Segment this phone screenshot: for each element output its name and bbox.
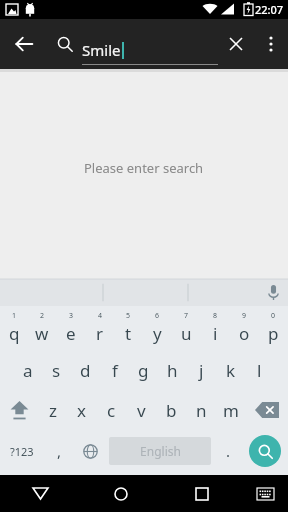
button[interactable]: 1 xyxy=(0,306,28,350)
staticText: d xyxy=(80,359,91,382)
staticText: q xyxy=(9,322,20,345)
button[interactable]: . xyxy=(214,430,242,472)
staticText: 2 xyxy=(40,311,45,321)
button[interactable]: n xyxy=(186,390,216,430)
button[interactable]: z xyxy=(38,390,67,430)
button[interactable]: Clear xyxy=(218,26,254,62)
button[interactable]: Backspace xyxy=(246,390,288,430)
button[interactable]: English xyxy=(109,437,211,465)
staticText: Please enter search xyxy=(84,159,204,177)
staticText: w xyxy=(35,322,49,345)
button[interactable]: 9 xyxy=(230,306,259,350)
staticText: 1 xyxy=(12,311,17,321)
button[interactable]: Back xyxy=(0,475,80,512)
button[interactable]: j xyxy=(187,350,216,390)
button[interactable]: 8 xyxy=(201,306,230,350)
staticText: English xyxy=(140,443,181,459)
staticText: Smile xyxy=(82,40,121,60)
button[interactable]: Switch keyboard xyxy=(242,475,288,512)
button[interactable]: k xyxy=(216,350,245,390)
staticText: r xyxy=(96,322,104,345)
staticText: 6 xyxy=(155,311,160,321)
staticText: 22:07 xyxy=(255,2,284,17)
staticText: h xyxy=(167,359,178,382)
staticText: i xyxy=(213,322,218,345)
staticText: , xyxy=(57,441,62,461)
staticText: 3 xyxy=(69,311,74,321)
staticText: e xyxy=(66,322,76,345)
button[interactable]: Change language xyxy=(74,430,106,472)
button[interactable]: 5 xyxy=(114,306,143,350)
button[interactable]: h xyxy=(158,350,187,390)
button[interactable]: g xyxy=(129,350,158,390)
staticText: ?123 xyxy=(10,444,34,459)
button[interactable]: Recent apps xyxy=(161,475,242,512)
button[interactable]: 3 xyxy=(56,306,85,350)
button[interactable]: 7 xyxy=(172,306,201,350)
staticText: a xyxy=(23,359,33,382)
button[interactable]: , xyxy=(44,430,74,472)
button[interactable]: Back xyxy=(0,20,48,68)
button[interactable]: f xyxy=(100,350,129,390)
staticText: 7 xyxy=(184,311,189,321)
button[interactable]: 0 xyxy=(259,306,288,350)
staticText: g xyxy=(138,359,149,382)
staticText: p xyxy=(268,322,279,345)
button[interactable]: b xyxy=(156,390,186,430)
staticText: c xyxy=(107,399,116,422)
button[interactable]: ?123 xyxy=(0,430,44,472)
staticText: j xyxy=(199,359,204,382)
staticText: 4 xyxy=(98,311,103,321)
button[interactable]: s xyxy=(42,350,71,390)
staticText: l xyxy=(257,359,262,382)
button[interactable]: Voice input xyxy=(258,279,288,306)
button[interactable]: c xyxy=(96,390,126,430)
staticText: 9 xyxy=(242,311,247,321)
staticText: m xyxy=(223,399,239,422)
button[interactable]: 4 xyxy=(85,306,114,350)
button[interactable]: Home xyxy=(80,475,161,512)
button[interactable]: d xyxy=(71,350,100,390)
button[interactable]: v xyxy=(126,390,156,430)
staticText: . xyxy=(226,441,231,461)
staticText: x xyxy=(77,399,86,422)
staticText: n xyxy=(196,399,207,422)
staticText: o xyxy=(239,322,250,345)
button[interactable]: l xyxy=(245,350,274,390)
staticText: u xyxy=(181,322,192,345)
staticText: s xyxy=(52,359,61,382)
staticText: f xyxy=(112,359,118,382)
button[interactable]: 6 xyxy=(143,306,172,350)
button[interactable]: Search xyxy=(48,27,82,61)
button[interactable]: x xyxy=(67,390,96,430)
staticText: z xyxy=(49,399,57,422)
staticText: b xyxy=(166,399,177,422)
button[interactable]: Search xyxy=(249,435,281,467)
staticText: v xyxy=(137,399,146,422)
staticText: 8 xyxy=(213,311,218,321)
button[interactable]: a xyxy=(14,350,42,390)
staticText: k xyxy=(226,359,236,382)
staticText: 5 xyxy=(126,311,131,321)
button[interactable]: m xyxy=(216,390,246,430)
staticText: t xyxy=(125,322,132,345)
staticText: 0 xyxy=(271,311,276,321)
button[interactable]: 2 xyxy=(28,306,56,350)
button[interactable]: More options xyxy=(254,27,288,61)
staticText: y xyxy=(153,322,162,345)
button[interactable]: Shift xyxy=(0,390,38,430)
